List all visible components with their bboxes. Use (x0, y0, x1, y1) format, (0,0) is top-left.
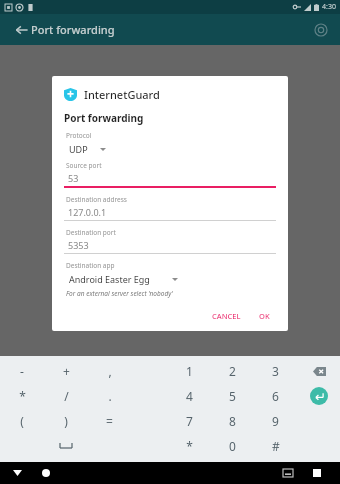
staticText: 1 (186, 363, 193, 379)
staticText: / (64, 388, 69, 404)
button[interactable]: , (88, 359, 131, 383)
staticText: 2 (229, 363, 236, 379)
staticText: 5 (229, 388, 236, 404)
staticText: Destination app (66, 261, 115, 270)
staticText: CANCEL (212, 311, 241, 321)
button[interactable]: 53 (64, 172, 276, 188)
button[interactable]: * (168, 433, 211, 458)
button[interactable]: 7 (168, 408, 211, 433)
button[interactable]: Recent apps (308, 464, 326, 482)
staticText: 53 (68, 172, 79, 184)
button[interactable]: Backspace (309, 361, 329, 381)
button[interactable]: 3 (254, 359, 297, 383)
staticText: * (19, 388, 26, 404)
staticText: Port forwarding (31, 22, 115, 37)
staticText: * (186, 438, 193, 454)
button[interactable]: # (254, 433, 297, 458)
staticText: 127.0.0.1 (68, 206, 107, 218)
staticText: For an external server select 'nobody' (66, 289, 173, 298)
button[interactable]: = (88, 408, 131, 433)
button[interactable]: CANCEL (206, 308, 247, 324)
button[interactable]: 5 (211, 383, 254, 408)
staticText: 7 (186, 413, 193, 429)
button[interactable]: 127.0.0.1 (64, 206, 276, 221)
staticText: Protocol (66, 131, 92, 140)
button[interactable]: Android Easter Egg (64, 273, 276, 285)
staticText: ) (64, 413, 68, 429)
button[interactable]: Back (8, 16, 36, 44)
button[interactable]: . (88, 383, 131, 408)
staticText: . (108, 388, 112, 404)
staticText: 3 (272, 363, 279, 379)
staticText: - (20, 363, 24, 379)
button[interactable]: Enter (310, 387, 328, 405)
button[interactable]: Settings (308, 17, 334, 43)
button[interactable]: - (0, 359, 44, 383)
button[interactable]: 8 (211, 408, 254, 433)
button[interactable]: 0 (211, 433, 254, 458)
button[interactable]: / (44, 383, 88, 408)
staticText: Source port (66, 161, 102, 170)
staticText: UDP (69, 143, 88, 155)
staticText: ( (20, 413, 24, 429)
staticText: Destination port (66, 228, 116, 237)
button[interactable]: + (44, 359, 88, 383)
button[interactable]: * (0, 383, 44, 408)
staticText: # (272, 438, 280, 454)
staticText: 5353 (68, 239, 89, 251)
button[interactable]: 1 (168, 359, 211, 383)
staticText: 9 (272, 413, 279, 429)
button[interactable]: 4 (168, 383, 211, 408)
staticText: 8 (229, 413, 236, 429)
staticText: OK (259, 311, 270, 321)
staticText: , (108, 363, 112, 379)
staticText: 4:30 (322, 2, 336, 12)
staticText: + (63, 363, 70, 379)
button[interactable] (44, 433, 88, 458)
button[interactable]: Switch input method (279, 464, 297, 482)
staticText: Destination address (66, 195, 127, 204)
button[interactable]: ) (44, 408, 88, 433)
button[interactable]: 5353 (64, 239, 276, 254)
staticText: 0 (229, 438, 236, 454)
staticText: InternetGuard (84, 87, 160, 102)
button[interactable]: 2 (211, 359, 254, 383)
button[interactable]: Home (37, 464, 55, 482)
button[interactable]: 6 (254, 383, 297, 408)
staticText: 6 (272, 388, 279, 404)
button[interactable]: 9 (254, 408, 297, 433)
button[interactable]: OK (253, 308, 276, 324)
button[interactable]: ( (0, 408, 44, 433)
button[interactable]: Hide keyboard (8, 464, 26, 482)
staticText: Port forwarding (64, 111, 144, 125)
button[interactable]: UDP (64, 143, 276, 155)
staticText: = (106, 413, 113, 429)
staticText: Android Easter Egg (69, 273, 150, 285)
staticText: 4 (186, 388, 193, 404)
